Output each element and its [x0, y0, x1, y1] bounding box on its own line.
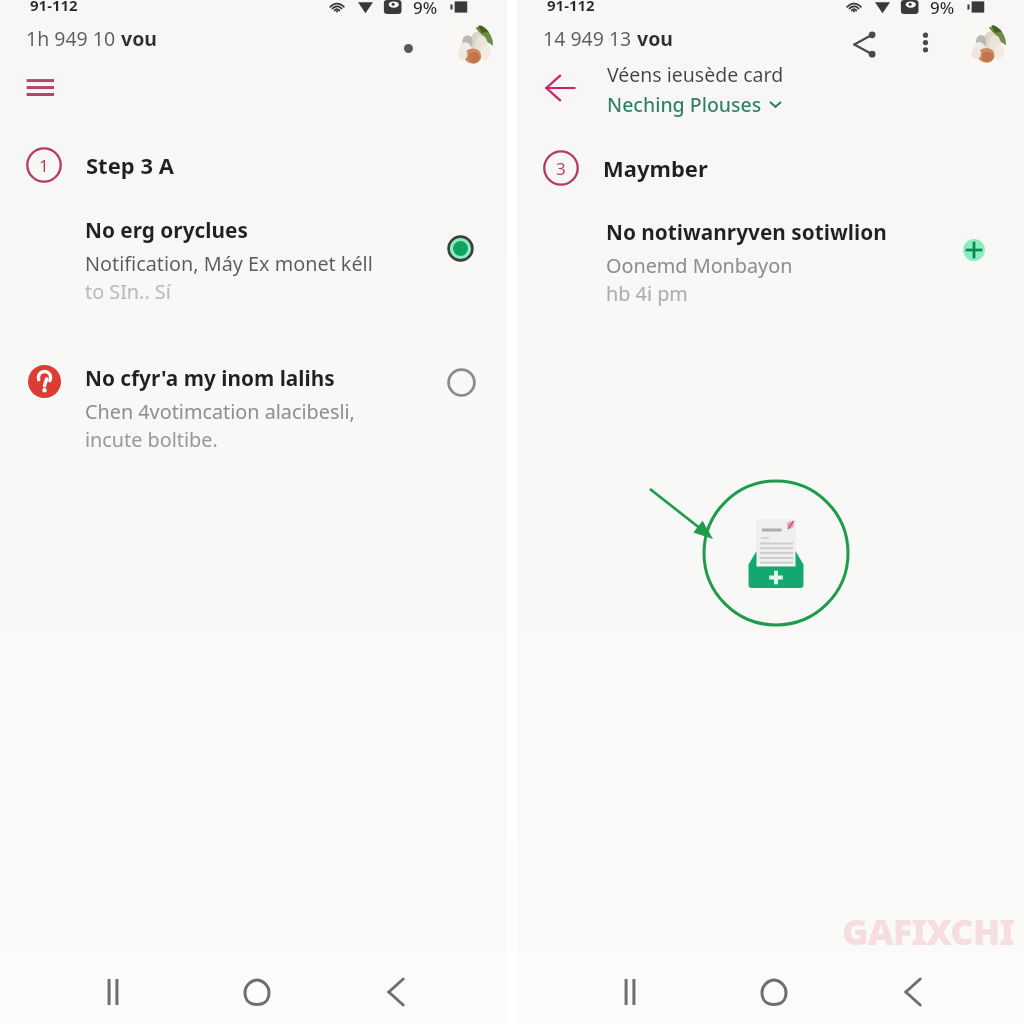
button[interactable]: Back	[888, 972, 938, 1012]
staticText: 91-112	[30, 0, 78, 15]
button[interactable]: Profile	[963, 23, 1006, 66]
staticText: 1	[39, 154, 49, 177]
button[interactable]: Not selected	[446, 367, 477, 398]
button[interactable]: Recents	[88, 972, 138, 1012]
staticText: hb 4i pm	[606, 280, 688, 307]
staticText: Chen 4votimcation alacibesli,	[85, 398, 355, 425]
button[interactable]: Back	[539, 70, 579, 106]
staticText: Neching Plouses	[607, 91, 762, 117]
button[interactable]: 1	[26, 147, 174, 183]
staticText: incute boltibe.	[85, 426, 218, 453]
button[interactable]: Share	[841, 22, 885, 66]
staticText: Notification, Máy Ex monet kéll	[85, 250, 373, 277]
button[interactable]: Profile	[449, 23, 493, 67]
button[interactable]: No notiwanryven sotiwlion	[606, 217, 887, 247]
button[interactable]: Home	[749, 972, 799, 1012]
staticText: Maymber	[603, 153, 708, 183]
button[interactable]: 3	[543, 150, 708, 186]
button[interactable]: Selected	[446, 234, 475, 263]
staticText: to SIn.. Sí	[85, 278, 171, 305]
staticText: Oonemd Monbayon	[606, 252, 793, 279]
button[interactable]: Recents	[605, 972, 655, 1012]
staticText: vou	[121, 25, 157, 52]
staticText: No notiwanryven sotiwlion	[606, 218, 887, 246]
staticText: 1h 949 10	[26, 25, 121, 52]
button[interactable]: Back	[371, 972, 421, 1012]
button[interactable]: Help	[27, 364, 61, 398]
staticText: GAFIXCHI	[842, 907, 1015, 952]
staticText: Step 3 A	[86, 150, 174, 180]
staticText: 91-112	[547, 0, 595, 15]
button[interactable]: Menu	[22, 68, 58, 98]
staticText: Véens ieusède card	[607, 61, 784, 87]
button[interactable]: Add	[960, 236, 988, 264]
button[interactable]: No cfyr'a my inom lalihs	[85, 363, 335, 393]
staticText: 3	[556, 157, 566, 180]
button[interactable]: No erg oryclues	[85, 215, 248, 245]
staticText: No cfyr'a my inom lalihs	[85, 364, 335, 392]
button[interactable]: More	[397, 37, 419, 59]
staticText: 9%	[413, 0, 438, 19]
button[interactable]: Neching Plouses	[607, 91, 781, 117]
button[interactable]: Home	[232, 972, 282, 1012]
staticText: 14 949 13	[543, 25, 637, 52]
button[interactable]: More options	[905, 22, 945, 62]
staticText: No erg oryclues	[85, 216, 248, 244]
staticText: 9%	[930, 0, 955, 19]
staticText: vou	[637, 25, 673, 52]
